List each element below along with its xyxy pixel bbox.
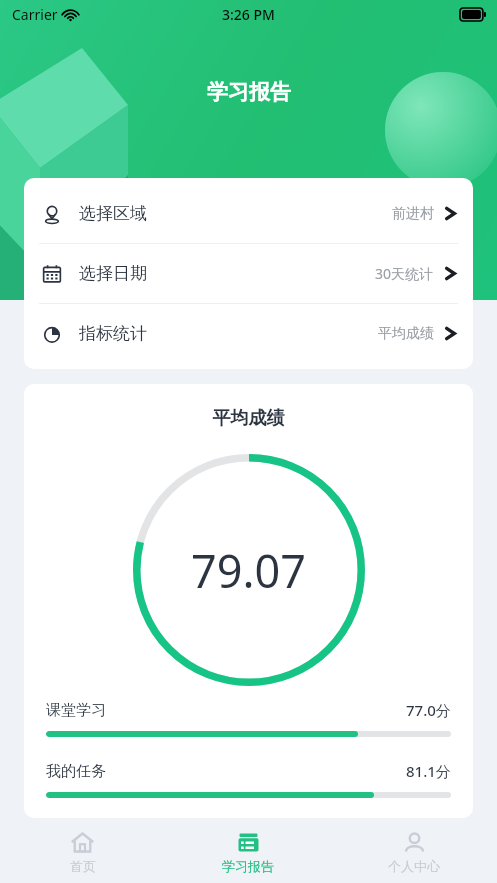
staticText: 30天统计 — [375, 264, 434, 283]
staticText: 平均成绩 — [378, 325, 434, 343]
staticText: 选择日期 — [79, 263, 147, 284]
staticText: 我的任务 — [46, 762, 106, 781]
button[interactable]: 学习报告 — [165, 820, 331, 883]
button[interactable]: 首页 — [0, 820, 165, 883]
staticText: 首页 — [70, 858, 96, 874]
button[interactable]: 选择日期 — [24, 244, 473, 303]
staticText: 选择区域 — [79, 203, 147, 224]
staticText: 前进村 — [392, 205, 434, 223]
staticText: 平均成绩 — [24, 407, 473, 430]
staticText: 77.0分 — [406, 700, 451, 720]
staticText: 学习报告 — [222, 858, 274, 874]
staticText: 课堂学习 — [46, 701, 106, 720]
button[interactable]: 选择区域 — [24, 184, 473, 243]
staticText: 指标统计 — [79, 323, 147, 344]
staticText: 79.07 — [191, 540, 307, 601]
staticText: 学习报告 — [207, 79, 291, 105]
staticText: 个人中心 — [388, 858, 440, 874]
staticText: Carrier — [12, 5, 58, 24]
button[interactable]: 个人中心 — [331, 820, 497, 883]
staticText: 81.1分 — [406, 761, 451, 781]
button[interactable]: 指标统计 — [24, 304, 473, 363]
staticText: 3:26 PM — [222, 5, 275, 24]
